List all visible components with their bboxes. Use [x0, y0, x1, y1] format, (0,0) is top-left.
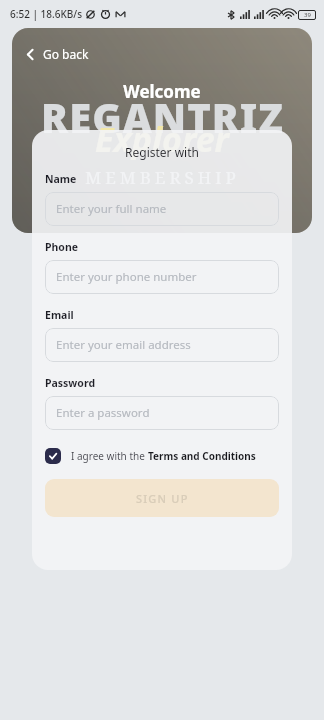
staticText: SIGN UP [136, 491, 189, 506]
button[interactable]: Enter your full name [45, 192, 279, 226]
staticText: Welcome [123, 80, 201, 103]
button[interactable]: I agree with the [45, 448, 279, 464]
button[interactable]: Enter your phone number [45, 260, 279, 294]
staticText: 39 [304, 11, 311, 19]
staticText: 6:52 | 18.6KB/s [10, 7, 83, 21]
staticText: Enter your email address [56, 337, 191, 353]
button[interactable]: Enter a password [45, 396, 279, 430]
staticText: Enter a password [56, 405, 150, 421]
staticText: Register with [45, 144, 279, 160]
staticText: Go back [43, 46, 89, 62]
staticText: Password [45, 376, 96, 390]
staticText: Explorer [95, 116, 229, 162]
staticText: Name [45, 172, 77, 186]
staticText: Email [45, 308, 74, 322]
staticText: Phone [45, 240, 79, 254]
staticText: REGANTRIZ [41, 90, 284, 144]
button[interactable]: Enter your email address [45, 328, 279, 362]
staticText: MEMBERSHIP [85, 166, 240, 189]
staticText: I agree with the [71, 449, 148, 463]
button[interactable]: Go back [18, 42, 95, 66]
staticText: Enter your full name [56, 201, 167, 217]
button[interactable]: SIGN UP [45, 479, 279, 517]
staticText: Terms and Conditions [148, 449, 256, 463]
staticText: Enter your phone number [56, 269, 197, 285]
